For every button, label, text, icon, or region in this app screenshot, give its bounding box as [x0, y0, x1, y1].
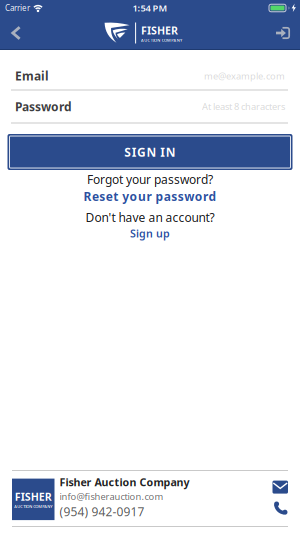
staticText: FISHER — [141, 23, 178, 37]
staticText: SIGN IN — [124, 144, 176, 160]
button[interactable]: Reset your password — [83, 188, 216, 204]
staticText: AUCTION COMPANY — [14, 504, 52, 509]
staticText: Email — [15, 68, 49, 84]
staticText: info@fisherauction.com — [59, 490, 163, 503]
staticText: At least 8 characters — [202, 100, 285, 113]
button[interactable]: SIGN IN — [7, 134, 292, 170]
button[interactable]: (954) 942-0917 — [59, 504, 144, 520]
button[interactable] — [5, 20, 27, 46]
staticText: Fisher Auction Company — [59, 475, 189, 489]
staticText: Reset your password — [83, 188, 216, 204]
button[interactable]: Email — [0, 68, 300, 84]
staticText: Sign up — [130, 226, 170, 240]
staticText: me@example.com — [204, 70, 285, 82]
staticText: AUCTION COMPANY — [141, 37, 182, 43]
staticText: Carrier — [5, 3, 30, 13]
staticText: (954) 942-0917 — [59, 504, 144, 520]
button[interactable] — [274, 501, 288, 515]
staticText: FISHER — [15, 490, 52, 504]
staticText: Password — [15, 98, 72, 114]
button[interactable] — [272, 481, 288, 494]
staticText: 1:54 PM — [132, 2, 167, 14]
button[interactable] — [270, 21, 296, 45]
button[interactable]: info@fisherauction.com — [59, 490, 163, 503]
staticText: Don't have an account? — [85, 209, 214, 225]
staticText: Forgot your password? — [87, 171, 213, 187]
button[interactable]: Sign up — [130, 226, 170, 240]
button[interactable]: Password — [0, 98, 300, 114]
